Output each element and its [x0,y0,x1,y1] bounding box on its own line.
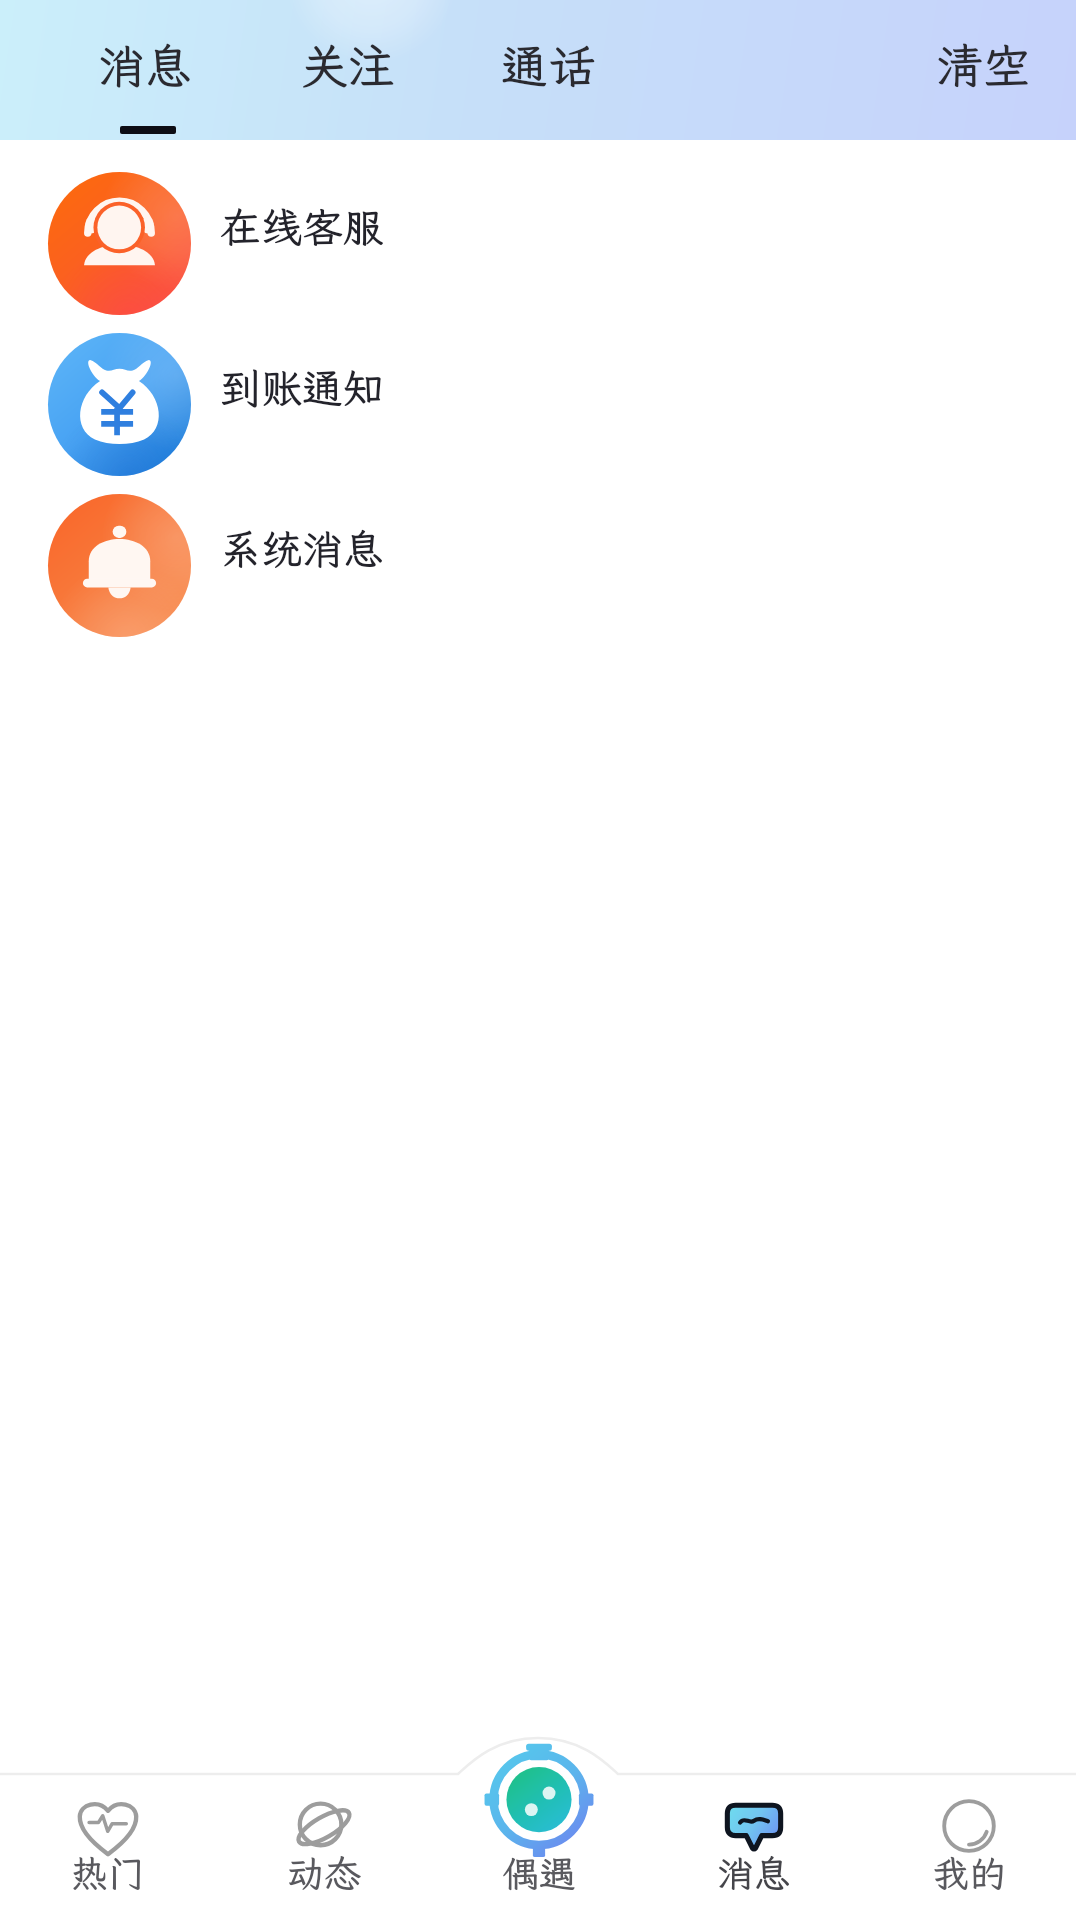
other: 铃铛图标 [48,494,191,637]
other: 钱袋图标 [48,333,191,476]
staticText: 通话 [501,34,595,96]
staticText: 清空 [936,34,1030,96]
staticText: 消息 [98,34,192,96]
button[interactable]: 客服头像 [0,163,1076,324]
staticText: 我的 [932,1849,1006,1898]
button[interactable]: 铃铛图标 [0,485,1076,646]
staticText: 偶遇 [502,1849,576,1898]
button[interactable]: 消息 [646,1733,861,1916]
button[interactable]: 关注 [301,0,395,126]
staticText: 热门 [71,1849,145,1898]
button[interactable]: 通话 [501,0,595,126]
button[interactable]: 我的 [861,1733,1076,1916]
button[interactable]: 清空 [936,34,1030,96]
staticText: 在线客服 [220,200,384,254]
staticText: 消息 [717,1849,791,1898]
staticText: 系统消息 [220,522,384,576]
button[interactable]: 偶遇 [431,1733,646,1916]
staticText: 关注 [301,34,395,96]
staticText: 动态 [287,1849,361,1898]
button[interactable]: 动态 [216,1733,431,1916]
button[interactable]: 钱袋图标 [0,324,1076,485]
other: 客服头像 [48,172,191,315]
button[interactable]: 消息 [98,0,192,134]
button[interactable]: 热门 [0,1733,216,1916]
staticText: 到账通知 [220,361,384,415]
